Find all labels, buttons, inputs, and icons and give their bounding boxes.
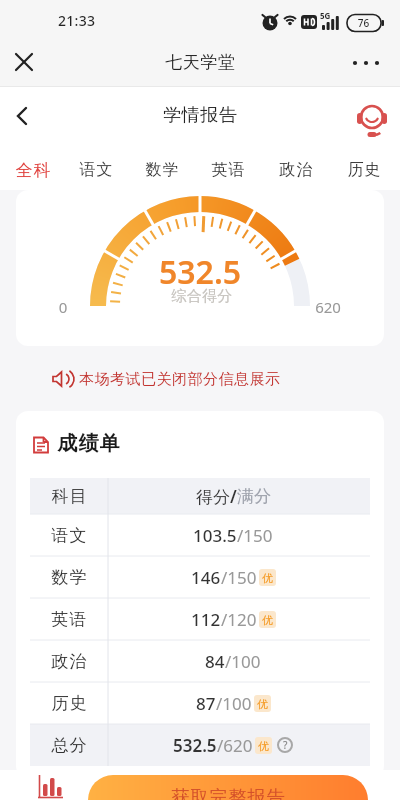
- staticText: 英语: [211, 160, 245, 180]
- staticText: 84: [205, 650, 225, 673]
- button[interactable]: 政治: [30, 640, 370, 682]
- staticText: 5G: [320, 10, 331, 21]
- staticText: 全科: [15, 160, 51, 181]
- button[interactable]: 数学: [136, 153, 188, 187]
- staticText: /100: [225, 650, 261, 673]
- button[interactable]: 本场考试已关闭部分信息展示: [50, 368, 281, 390]
- staticText: /100: [216, 692, 252, 715]
- staticText: 本场考试已关闭部分信息展示: [79, 370, 281, 389]
- staticText: 得分/: [196, 485, 237, 508]
- staticText: 620: [311, 297, 345, 317]
- staticText: 112: [191, 608, 221, 631]
- staticText: 103.5: [193, 524, 237, 547]
- button[interactable]: [348, 46, 384, 78]
- staticText: 政治: [279, 160, 313, 180]
- staticText: 政治: [51, 651, 87, 672]
- staticText: 语文: [79, 160, 113, 180]
- staticText: 总分: [51, 735, 87, 756]
- staticText: 数学: [51, 567, 87, 588]
- staticText: 英语: [51, 609, 87, 630]
- staticText: 历史: [51, 693, 87, 714]
- staticText: 优: [258, 739, 269, 753]
- button[interactable]: 语文: [70, 153, 122, 187]
- staticText: 语文: [51, 525, 87, 546]
- button[interactable]: 英语: [202, 153, 254, 187]
- staticText: 满分: [237, 486, 271, 507]
- staticText: 综合得分: [18, 287, 384, 306]
- staticText: 0: [53, 297, 73, 317]
- staticText: 532.5: [173, 734, 217, 757]
- staticText: /150: [221, 566, 257, 589]
- staticText: 146: [191, 566, 221, 589]
- staticText: ?: [283, 738, 288, 752]
- button[interactable]: [8, 46, 40, 78]
- staticText: /620: [217, 734, 253, 757]
- button[interactable]: 政治: [270, 153, 322, 187]
- button[interactable]: [6, 100, 38, 132]
- staticText: 优: [257, 697, 268, 711]
- staticText: 历史: [347, 160, 381, 180]
- staticText: 科目: [51, 486, 87, 507]
- staticText: 获取完整报告: [171, 786, 285, 800]
- staticText: 优: [262, 571, 273, 585]
- button[interactable]: 历史: [30, 682, 370, 724]
- staticText: 87: [196, 692, 216, 715]
- staticText: 21:33: [58, 11, 96, 30]
- button[interactable]: 历史: [338, 153, 390, 187]
- staticText: 数学: [145, 160, 179, 180]
- button[interactable]: 数学: [30, 556, 370, 598]
- staticText: 七天学堂: [165, 52, 235, 73]
- staticText: /150: [237, 524, 273, 547]
- button[interactable]: 全科: [7, 153, 59, 187]
- staticText: /120: [221, 608, 257, 631]
- staticText: 学情报告: [163, 104, 237, 127]
- button[interactable]: 获取完整报告: [88, 775, 368, 800]
- staticText: 成绩单: [57, 431, 120, 456]
- staticText: 76: [347, 16, 380, 30]
- button[interactable]: [354, 101, 390, 137]
- staticText: 优: [262, 613, 273, 627]
- button[interactable]: [30, 772, 72, 800]
- button[interactable]: 总分: [30, 724, 370, 766]
- button[interactable]: 英语: [30, 598, 370, 640]
- button[interactable]: 语文: [30, 514, 370, 556]
- staticText: 532.5: [16, 250, 384, 294]
